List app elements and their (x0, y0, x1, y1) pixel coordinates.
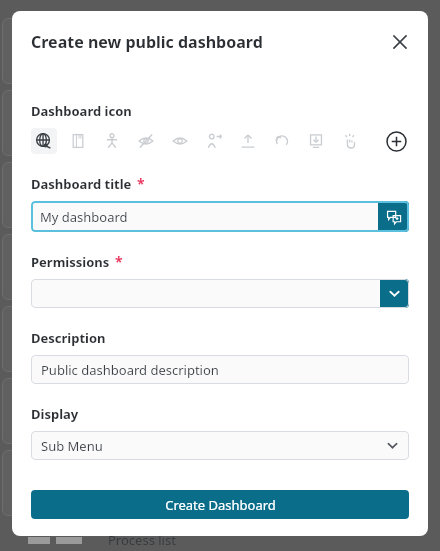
button[interactable]: Upload icon (235, 128, 261, 154)
staticText: Process list (108, 531, 176, 549)
button[interactable]: Visible icon (167, 128, 193, 154)
staticText: Description (31, 329, 106, 347)
staticText: * (137, 174, 145, 193)
button[interactable]: Person icon (99, 128, 125, 154)
button[interactable]: Create Dashboard (31, 490, 409, 519)
staticText: Create Dashboard (165, 496, 276, 514)
button[interactable]: Undo icon (269, 128, 295, 154)
button[interactable]: Click icon (337, 128, 363, 154)
button[interactable]: Close (386, 28, 414, 56)
button[interactable]: Download icon (303, 128, 329, 154)
button[interactable]: Hidden icon (133, 128, 159, 154)
button[interactable] (31, 279, 380, 308)
staticText: Permissions (31, 253, 110, 271)
button[interactable]: My dashboard (31, 201, 378, 232)
staticText: Display (31, 405, 79, 423)
button[interactable]: Translate (378, 201, 409, 232)
staticText: Dashboard title (31, 175, 132, 193)
button[interactable]: Public dashboard description (31, 355, 409, 384)
staticText: * (115, 252, 123, 271)
button[interactable]: Add icon (383, 128, 409, 154)
button[interactable]: Book icon (65, 128, 91, 154)
staticText: My dashboard (40, 208, 128, 226)
button[interactable]: Add user icon (201, 128, 227, 154)
button[interactable]: Sub Menu (31, 431, 409, 460)
staticText: Create new public dashboard (31, 31, 263, 53)
staticText: Dashboard icon (31, 102, 132, 120)
button[interactable]: Globe icon (31, 128, 57, 154)
staticText: Sub Menu (41, 437, 103, 455)
button[interactable]: Open permissions (380, 279, 409, 308)
staticText: Public dashboard description (41, 361, 219, 379)
